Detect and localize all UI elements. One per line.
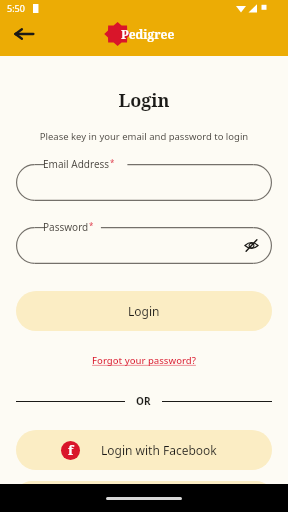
staticText: f (68, 441, 74, 459)
button[interactable]: Show password (16, 227, 272, 264)
staticText: * (89, 220, 94, 231)
button[interactable]: Back (11, 20, 39, 48)
button[interactable]: Show password (244, 238, 259, 253)
button[interactable]: f (16, 430, 272, 470)
staticText: Login (128, 303, 160, 319)
button[interactable] (16, 164, 272, 201)
staticText: Pedigree (121, 26, 175, 42)
staticText: 5:50 (7, 2, 25, 14)
staticText: * (110, 157, 115, 168)
staticText: Login with Facebook (101, 442, 217, 458)
staticText: Email Address (43, 157, 110, 171)
staticText: OR (136, 394, 151, 408)
staticText: Password (43, 220, 89, 234)
button[interactable]: Forgot your password? (0, 354, 288, 367)
button[interactable]: Login (16, 291, 272, 331)
staticText: Login (0, 88, 288, 113)
staticText: Please key in your email and password to… (0, 130, 288, 143)
button[interactable] (16, 481, 272, 512)
